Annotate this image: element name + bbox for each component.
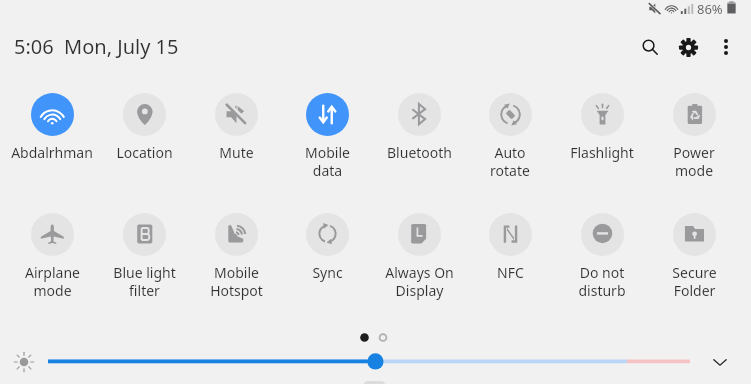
staticText: Mobile data: [305, 143, 350, 180]
staticText: 86%: [697, 0, 723, 18]
button[interactable]: Blue light filter: [98, 213, 190, 300]
staticText: Power mode: [673, 143, 715, 180]
button[interactable]: Mute: [190, 93, 282, 162]
staticText: Always On Display: [385, 263, 454, 300]
staticText: Secure Folder: [672, 263, 717, 300]
staticText: Blue light filter: [113, 263, 176, 300]
button[interactable]: Airplane mode: [6, 213, 98, 300]
staticText: Location: [116, 143, 173, 162]
button[interactable]: Auto rotate: [464, 93, 556, 180]
staticText: Abdalrhman: [11, 143, 93, 162]
staticText: Sync: [312, 263, 343, 282]
staticText: NFC: [497, 263, 524, 282]
button[interactable]: Flashlight: [556, 93, 648, 162]
staticText: Mobile Hotspot: [210, 263, 263, 300]
button[interactable]: Settings: [669, 28, 707, 66]
button[interactable]: Secure Folder: [648, 213, 740, 300]
staticText: Bluetooth: [387, 143, 452, 162]
staticText: Mute: [219, 143, 254, 162]
staticText: 5:06 Mon, July 15: [14, 33, 179, 60]
button[interactable]: Do not disturb: [556, 213, 648, 300]
button[interactable]: Mobile data: [281, 93, 373, 180]
button[interactable]: Abdalrhman: [6, 93, 98, 162]
button[interactable]: Collapse quick settings: [702, 346, 738, 378]
button[interactable]: Location: [98, 93, 190, 162]
button[interactable]: Search: [631, 28, 669, 66]
button[interactable]: Always On Display: [373, 213, 465, 300]
staticText: Flashlight: [570, 143, 634, 162]
button[interactable]: Bluetooth: [373, 93, 465, 162]
button[interactable]: NFC: [464, 213, 556, 282]
staticText: Airplane mode: [25, 263, 80, 300]
button[interactable]: Sync: [281, 213, 373, 282]
staticText: Do not disturb: [578, 263, 626, 300]
button[interactable]: Mobile Hotspot: [190, 213, 282, 300]
button[interactable]: Power mode: [648, 93, 740, 180]
button[interactable]: More options: [707, 28, 745, 66]
staticText: Auto rotate: [490, 143, 530, 180]
